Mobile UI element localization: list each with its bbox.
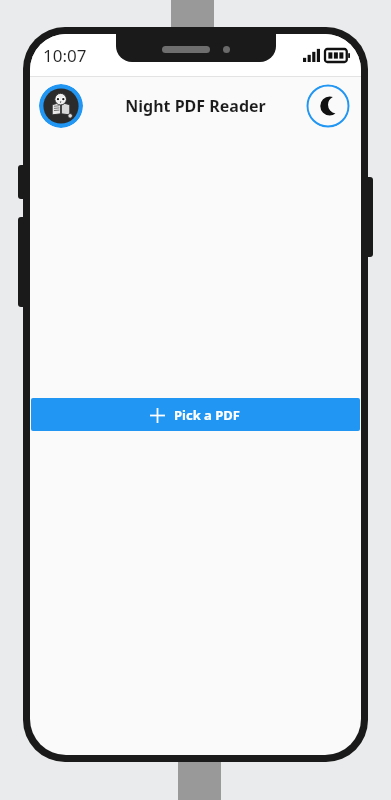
- button[interactable]: Pick a PDF: [31, 398, 360, 431]
- staticText: Pick a PDF: [174, 406, 241, 424]
- staticText: 10:07: [43, 44, 87, 67]
- staticText: Night PDF Reader: [125, 95, 266, 117]
- button[interactable]: App logo: [39, 84, 83, 128]
- button[interactable]: Toggle night mode: [306, 84, 350, 128]
